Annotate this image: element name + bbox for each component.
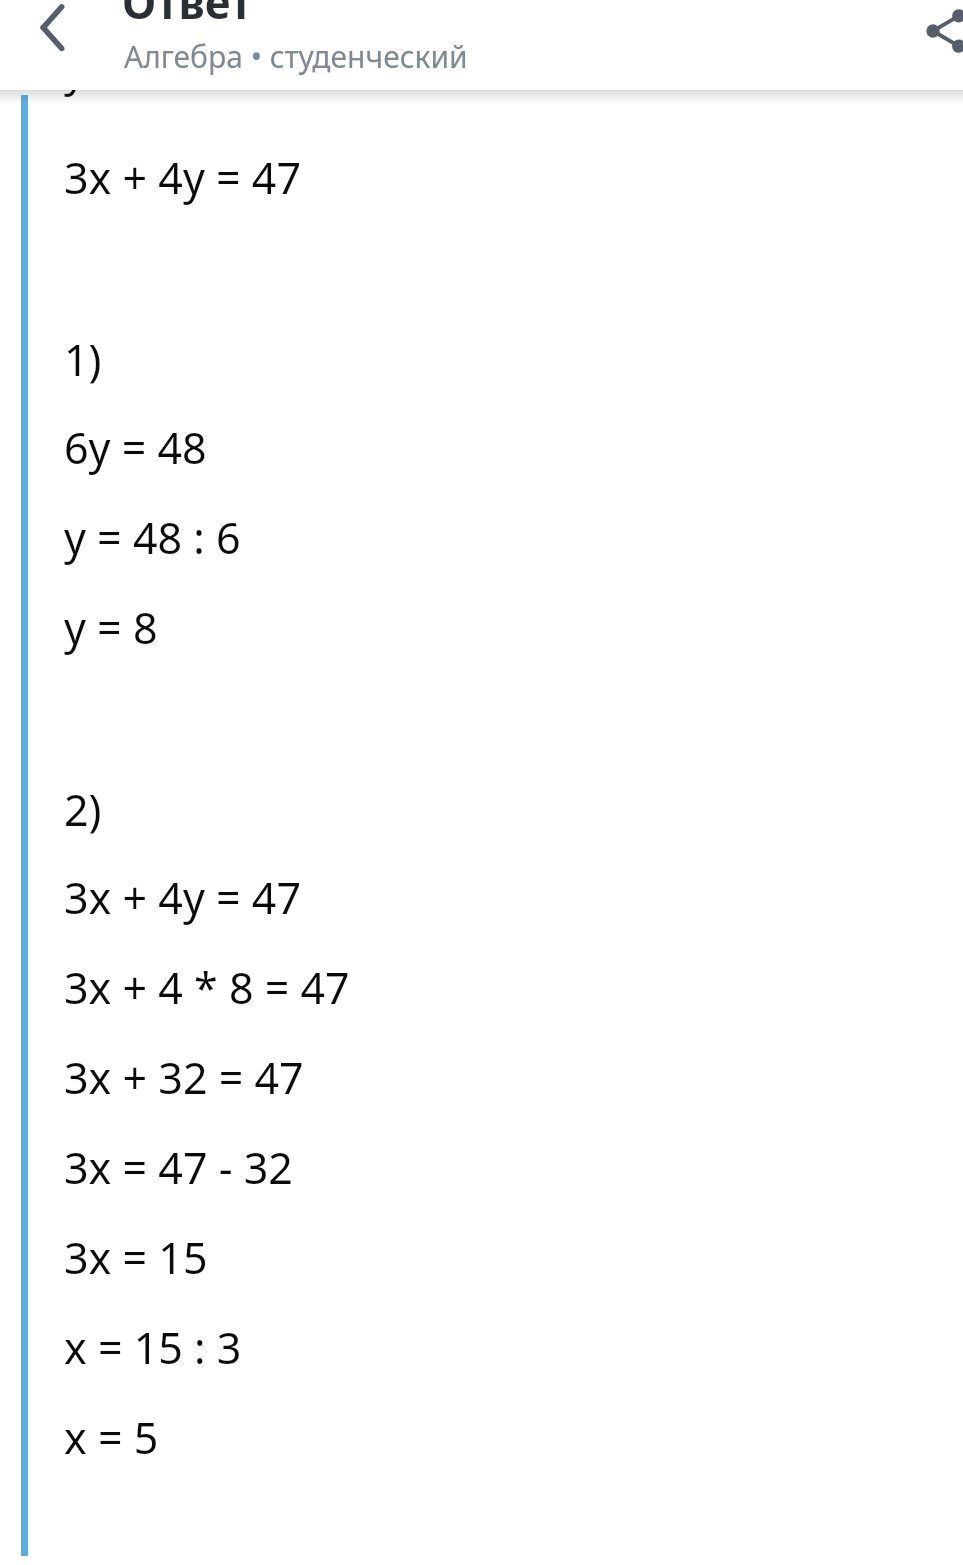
staticText: x = 15 : 3 — [64, 1318, 242, 1377]
staticText: 2) — [64, 780, 102, 839]
staticText: 3x + 4 * 8 = 47 — [64, 958, 350, 1017]
button[interactable]: Back — [8, 0, 96, 62]
staticText: Алгебра • студенческий — [124, 36, 468, 77]
staticText: x = 5 — [64, 1408, 159, 1467]
staticText: 3x + 4y = 47 — [64, 868, 301, 927]
staticText: y = 48 : 6 — [64, 508, 241, 567]
staticText: 3x + 32 = 47 — [64, 1048, 304, 1107]
staticText: 1) — [64, 330, 102, 389]
staticText: Ответ — [122, 0, 253, 32]
staticText: y — [64, 40, 86, 99]
staticText: 3x + 4y = 47 — [64, 148, 301, 207]
staticText: 3x = 15 — [64, 1228, 208, 1287]
staticText: y = 8 — [64, 598, 158, 657]
button[interactable]: Share — [905, 0, 963, 62]
staticText: 6y = 48 — [64, 418, 207, 477]
staticText: 3x = 47 - 32 — [64, 1138, 293, 1197]
